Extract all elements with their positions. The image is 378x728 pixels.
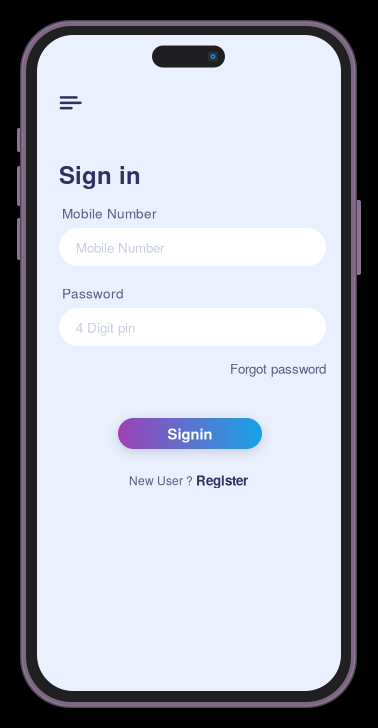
staticText: Register (196, 470, 248, 490)
button[interactable]: Signin (118, 418, 262, 449)
button[interactable]: New User ? (129, 472, 248, 488)
staticText: New User ? (129, 471, 193, 489)
staticText: Mobile Number (62, 203, 157, 222)
staticText: Signin (167, 423, 212, 444)
button[interactable]: Forgot password (59, 360, 326, 376)
button[interactable]: Menu (54, 85, 94, 119)
staticText: Mobile Number (76, 237, 164, 257)
staticText: Forgot password (230, 358, 326, 378)
staticText: Sign in (59, 157, 141, 191)
staticText: 4 Digit pin (76, 317, 135, 337)
staticText: Password (62, 283, 124, 302)
